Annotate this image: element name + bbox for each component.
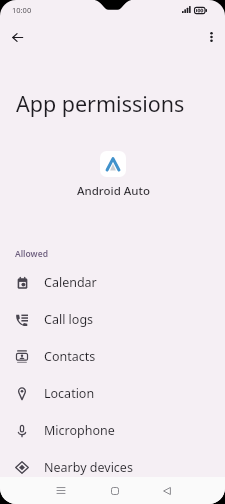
staticText: 10:00 [12, 5, 32, 15]
staticText: Contacts [44, 348, 96, 365]
button[interactable]: Location [0, 375, 225, 412]
staticText: Allowed [15, 248, 48, 260]
button[interactable]: Back [5, 25, 30, 50]
button[interactable]: Nearby devices [0, 449, 225, 486]
staticText: Calendar [44, 274, 97, 291]
button[interactable]: More options [199, 25, 223, 49]
staticText: Android Auto [77, 183, 150, 199]
button[interactable]: Contacts [0, 338, 225, 375]
staticText: Microphone [44, 422, 115, 439]
staticText: Location [44, 385, 95, 402]
button[interactable]: Home [100, 477, 129, 504]
button[interactable]: Back [152, 477, 181, 504]
staticText: App permissions [16, 89, 185, 118]
staticText: Call logs [44, 311, 94, 328]
button[interactable]: Calendar [0, 264, 225, 301]
button[interactable]: Microphone [0, 412, 225, 449]
staticText: Nearby devices [44, 459, 133, 476]
button[interactable]: Recent apps [46, 477, 75, 504]
button[interactable]: Call logs [0, 301, 225, 338]
